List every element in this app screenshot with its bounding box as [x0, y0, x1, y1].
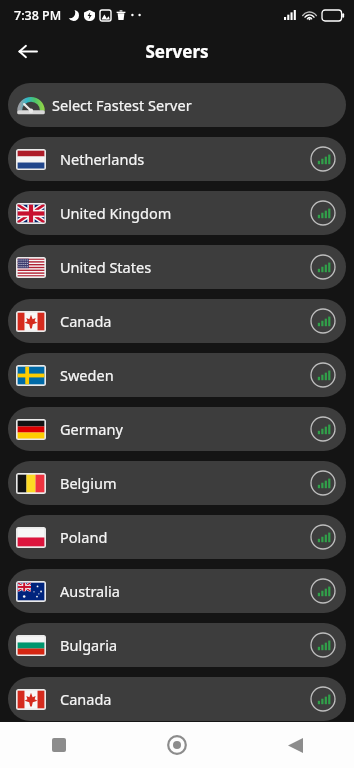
- button[interactable]: Recent apps: [0, 722, 118, 768]
- staticText: United States: [60, 257, 152, 277]
- button[interactable]: Belgium: [8, 461, 346, 505]
- staticText: Belgium: [60, 473, 117, 493]
- staticText: Canada: [60, 689, 112, 709]
- staticText: Canada: [60, 311, 112, 331]
- staticText: Bulgaria: [60, 635, 118, 655]
- button[interactable]: United States: [8, 245, 346, 289]
- button[interactable]: Bulgaria: [8, 623, 346, 667]
- staticText: Germany: [60, 419, 123, 439]
- staticText: Sweden: [60, 365, 114, 385]
- button[interactable]: Canada: [8, 299, 346, 343]
- staticText: 7:38 PM: [14, 7, 62, 24]
- button[interactable]: Germany: [8, 407, 346, 451]
- button[interactable]: Australia: [8, 569, 346, 613]
- staticText: Australia: [60, 581, 120, 601]
- staticText: Netherlands: [60, 149, 145, 169]
- button[interactable]: Back: [8, 32, 46, 70]
- button[interactable]: Back: [236, 722, 354, 768]
- button[interactable]: Select Fastest Server: [8, 83, 346, 127]
- button[interactable]: Canada: [8, 677, 346, 721]
- staticText: Select Fastest Server: [52, 95, 192, 115]
- button[interactable]: Netherlands: [8, 137, 346, 181]
- staticText: Poland: [60, 527, 108, 547]
- button[interactable]: United Kingdom: [8, 191, 346, 235]
- button[interactable]: Sweden: [8, 353, 346, 397]
- staticText: Servers: [145, 40, 209, 63]
- button[interactable]: Poland: [8, 515, 346, 559]
- staticText: United Kingdom: [60, 203, 172, 223]
- button[interactable]: Home: [118, 722, 236, 768]
